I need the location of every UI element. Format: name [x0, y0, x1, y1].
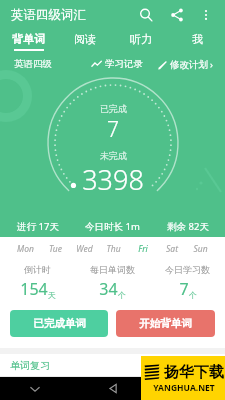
staticText: Wed [76, 243, 93, 255]
staticText: 每日单词数 [90, 264, 135, 275]
staticText: 单词复习 [10, 359, 50, 372]
staticText: 英语四级 [14, 58, 52, 70]
button[interactable]: 我 [169, 29, 225, 53]
staticText: Tue [49, 243, 62, 255]
staticText: 倒计时 [24, 264, 51, 275]
staticText: 扬华下载 [164, 363, 224, 382]
staticText: 剩余 82天 [167, 220, 209, 233]
staticText: 开始背单词 [139, 317, 192, 330]
staticText: 3398 [82, 161, 144, 198]
staticText: 我 [192, 32, 203, 46]
staticText: 7 [179, 278, 189, 300]
staticText: 未完成 [100, 150, 127, 161]
staticText: 听力 [130, 32, 152, 46]
staticText: 7 [107, 115, 119, 144]
button[interactable]: 开始背单词 [116, 310, 215, 337]
staticText: 天 [48, 290, 56, 300]
staticText: Sun [193, 243, 208, 255]
button[interactable]: Hide keyboard [0, 377, 70, 400]
staticText: 阅读 [74, 32, 96, 46]
button[interactable]: 已完成单词 [10, 310, 108, 337]
staticText: Sat [166, 243, 178, 255]
button[interactable]: Share [166, 4, 188, 26]
staticText: 学习记录 [105, 58, 143, 70]
staticText: 进行 17天 [17, 220, 59, 233]
staticText: YANGHUA.NET [153, 382, 215, 394]
staticText: 已完成 [100, 103, 127, 114]
button[interactable]: Back [83, 377, 143, 400]
staticText: 今日时长 1m [85, 220, 140, 233]
staticText: 修改计划 [170, 59, 208, 71]
staticText: 英语四级词汇 [11, 7, 86, 23]
staticText: › [210, 58, 213, 71]
button[interactable]: 背单词 [0, 29, 57, 53]
staticText: 已完成单词 [33, 317, 86, 330]
staticText: Thu [106, 243, 121, 255]
staticText: 背单词 [12, 32, 45, 46]
staticText: Fri [138, 243, 148, 255]
button[interactable]: 听力 [113, 29, 169, 53]
staticText: 个 [189, 290, 197, 300]
button[interactable]: 单词复习 [0, 354, 225, 376]
button[interactable]: More options [195, 4, 217, 26]
staticText: 个 [118, 290, 126, 300]
button[interactable]: Search [135, 4, 157, 26]
staticText: 154 [20, 278, 48, 300]
staticText: Mon [17, 243, 34, 255]
staticText: 今日学习数 [165, 264, 210, 275]
button[interactable]: 修改计划 [155, 58, 215, 71]
staticText: 34 [99, 278, 118, 300]
button[interactable]: 阅读 [57, 29, 113, 53]
button[interactable]: 学习记录 [89, 58, 145, 70]
